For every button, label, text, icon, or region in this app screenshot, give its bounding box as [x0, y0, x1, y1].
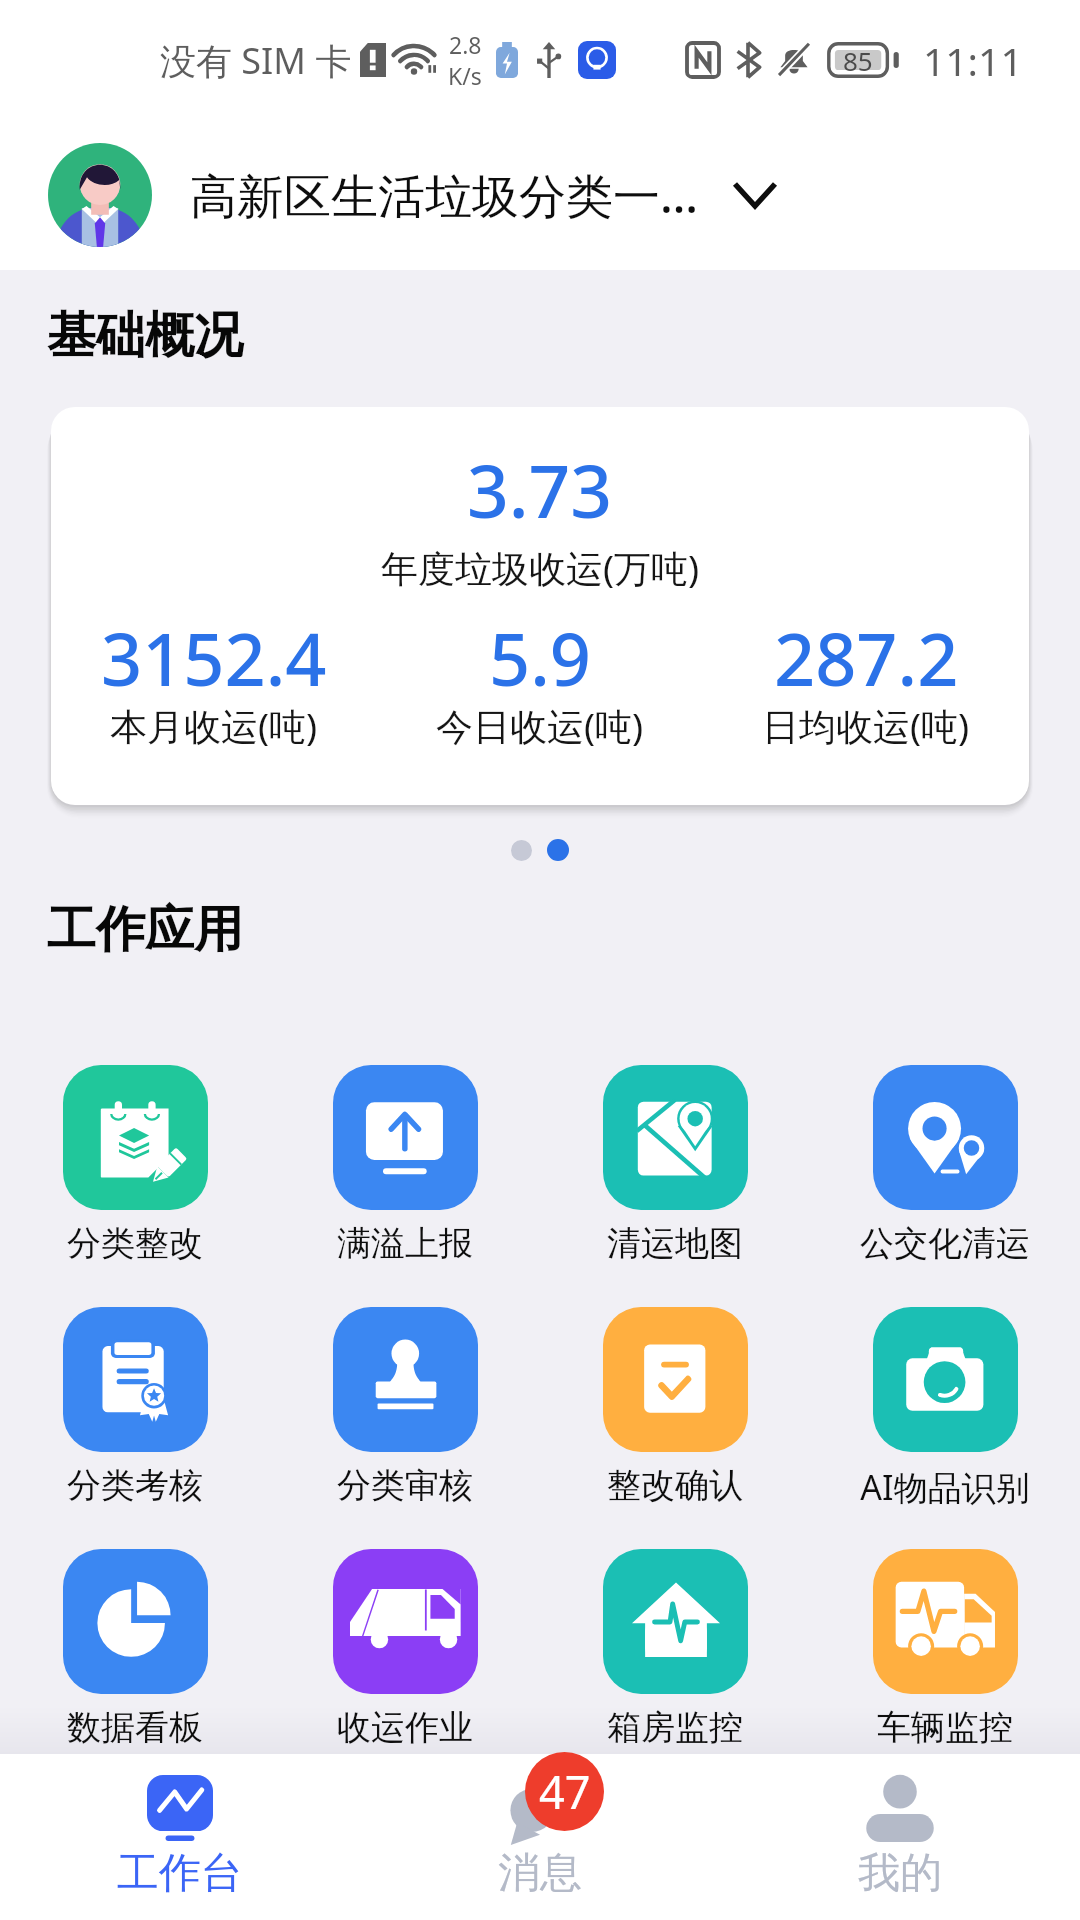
staticText: 消息 — [498, 1847, 582, 1900]
staticText: 箱房监控 — [607, 1706, 743, 1749]
staticText: 3.73 — [467, 440, 613, 539]
staticText: 85 — [843, 43, 873, 78]
button[interactable]: 3.73 — [51, 407, 1029, 805]
staticText: 工作应用 — [47, 899, 243, 961]
button[interactable]: 数据看板 — [0, 1549, 270, 1749]
staticText: 2.8 — [449, 29, 482, 60]
button[interactable]: Switch project — [723, 163, 787, 227]
staticText: 清运地图 — [607, 1222, 743, 1265]
staticText: 公交化清运 — [860, 1222, 1030, 1265]
button[interactable]: 分类审核 — [270, 1307, 540, 1507]
staticText: AI物品识别 — [860, 1464, 1030, 1510]
staticText: 年度垃圾收运(万吨) — [381, 542, 700, 593]
button[interactable]: 清运地图 — [540, 1065, 810, 1265]
staticText: 47 — [539, 1761, 591, 1822]
button[interactable]: 工作台 — [0, 1754, 360, 1896]
staticText: K/s — [448, 60, 482, 91]
button[interactable]: 47 — [360, 1754, 720, 1896]
staticText: 我的 — [858, 1847, 942, 1900]
staticText: 工作台 — [117, 1847, 243, 1900]
staticText: 287.2 — [774, 609, 959, 707]
staticText: 3152.4 — [101, 609, 327, 707]
staticText: 11:11 — [923, 34, 1023, 87]
staticText: 高新区生活垃圾分类一… — [190, 163, 699, 227]
staticText: 没有 SIM 卡 — [160, 36, 352, 85]
staticText: 日均收运(吨) — [762, 700, 970, 751]
staticText: 本月收运(吨) — [110, 700, 318, 751]
button[interactable]: 我的 — [720, 1754, 1080, 1896]
staticText: 车辆监控 — [877, 1706, 1013, 1749]
staticText: 数据看板 — [67, 1706, 203, 1749]
button[interactable]: 分类整改 — [0, 1065, 270, 1265]
staticText: 分类整改 — [67, 1222, 203, 1265]
button[interactable]: 分类考核 — [0, 1307, 270, 1507]
button[interactable]: 箱房监控 — [540, 1549, 810, 1749]
staticText: 收运作业 — [337, 1706, 473, 1749]
staticText: 分类考核 — [67, 1464, 203, 1507]
button[interactable]: 公交化清运 — [810, 1065, 1080, 1265]
staticText: 5.9 — [489, 609, 591, 707]
staticText: 今日收运(吨) — [436, 700, 644, 751]
button[interactable]: 整改确认 — [540, 1307, 810, 1507]
button[interactable]: 收运作业 — [270, 1549, 540, 1749]
button[interactable]: AI物品识别 — [810, 1307, 1080, 1510]
button[interactable]: 车辆监控 — [810, 1549, 1080, 1749]
staticText: 满溢上报 — [337, 1222, 473, 1265]
button[interactable]: 满溢上报 — [270, 1065, 540, 1265]
staticText: 整改确认 — [607, 1464, 743, 1507]
staticText: 基础概况 — [47, 305, 243, 367]
staticText: 分类审核 — [337, 1464, 473, 1507]
